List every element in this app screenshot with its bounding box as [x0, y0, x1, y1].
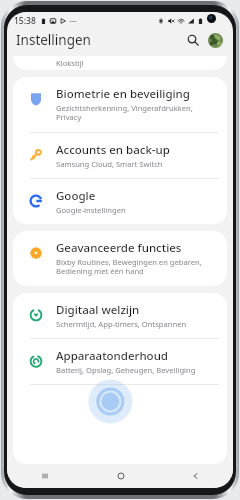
button[interactable]: Digital wellbeing [13, 293, 227, 338]
staticText: Instellingen [16, 31, 91, 49]
staticText: 15:38 [14, 15, 36, 27]
other: Digital wellbeing [23, 302, 49, 328]
staticText: Digitaal welzijn [56, 302, 140, 318]
staticText: Accounts en back-up [56, 142, 170, 158]
button[interactable]: Klokstijl [13, 56, 227, 70]
other: Device care [23, 348, 49, 374]
other: Biometrics and security [23, 86, 49, 112]
staticText: Biometrie en beveiliging [56, 86, 190, 102]
staticText: Bixby Routines, Bewegingen en gebaren, B… [56, 257, 213, 277]
staticText: Google [56, 188, 96, 204]
other: Google [23, 188, 49, 214]
staticText: Apparaatonderhoud [56, 348, 168, 364]
staticText: Google-instellingen [56, 205, 126, 215]
button[interactable]: Home [83, 464, 158, 488]
button[interactable]: Advanced features [13, 231, 227, 286]
staticText: Samsung Cloud, Smart Switch [56, 159, 163, 169]
button[interactable]: Accounts and backup [13, 133, 227, 178]
button[interactable]: Biometrics and security [13, 77, 227, 132]
other: Accounts and backup [23, 142, 49, 168]
staticText: Batterij, Opslag, Geheugen, Beveiliging [56, 365, 196, 375]
staticText: Klokstijl [56, 58, 84, 68]
button[interactable]: Profile [205, 30, 225, 50]
button[interactable]: Search [183, 30, 203, 50]
button[interactable]: Recent apps [7, 464, 83, 488]
other: Advanced features [23, 240, 49, 266]
staticText: Gezichtsherkenning, Vingerafdrukken, Pri… [56, 103, 213, 123]
button[interactable]: Back [158, 464, 233, 488]
staticText: Schermtijd, App-timers, Ontspannen [56, 319, 187, 329]
button[interactable]: Google [13, 179, 227, 224]
staticText: Geavanceerde functies [56, 240, 182, 256]
button[interactable]: Device care [13, 339, 227, 384]
